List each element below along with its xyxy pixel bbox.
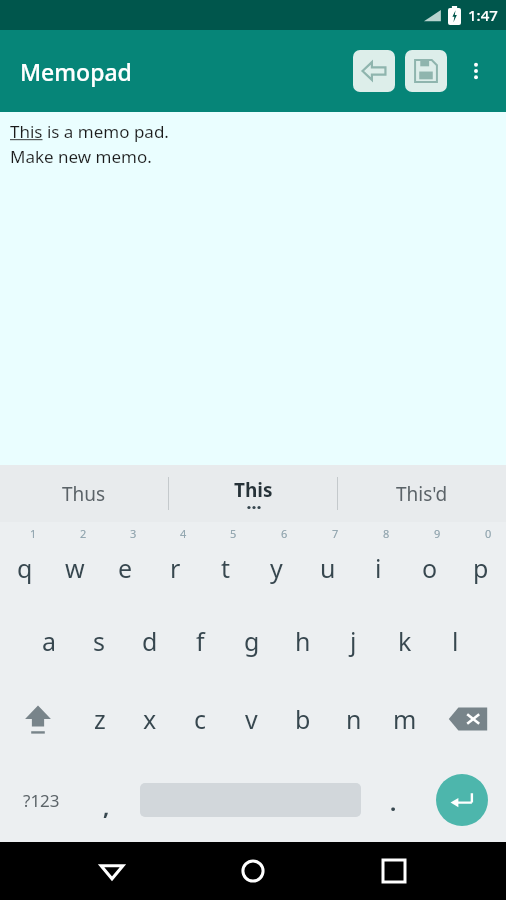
staticText: t [221, 551, 231, 585]
button[interactable]: k [379, 602, 430, 680]
button[interactable]: Back [83, 842, 141, 900]
staticText: r [170, 551, 181, 585]
button[interactable]: 1 [0, 522, 50, 602]
staticText: 2 [80, 526, 87, 541]
button[interactable]: l [430, 602, 481, 680]
staticText: 5 [230, 526, 237, 541]
button[interactable]: 5 [200, 522, 251, 602]
staticText: f [196, 624, 205, 658]
staticText: h [295, 624, 311, 658]
button[interactable]: 7 [302, 522, 353, 602]
staticText: 9 [434, 526, 441, 541]
staticText: s [93, 624, 105, 658]
staticText: n [346, 702, 362, 736]
button[interactable]: More options [452, 47, 500, 95]
staticText: g [244, 624, 260, 658]
button[interactable]: f [175, 602, 226, 680]
button[interactable]: 9 [404, 522, 455, 602]
staticText: l [452, 624, 459, 658]
button[interactable]: 3 [100, 522, 150, 602]
button[interactable]: z [75, 680, 125, 758]
button[interactable]: h [277, 602, 328, 680]
staticText: 1 [30, 526, 37, 541]
staticText: v [245, 702, 258, 736]
staticText: 7 [332, 526, 339, 541]
staticText: z [94, 702, 106, 736]
staticText: i [375, 551, 382, 585]
staticText: q [17, 551, 33, 585]
button[interactable]: Back [348, 45, 400, 97]
button[interactable]: Thus [0, 465, 168, 522]
button[interactable]: Space [130, 758, 370, 842]
button[interactable]: , [83, 758, 130, 842]
staticText: This is a memo pad. [10, 120, 169, 143]
button[interactable]: 0 [455, 522, 506, 602]
button[interactable]: Home [224, 842, 282, 900]
staticText: , [103, 791, 110, 821]
staticText: w [65, 551, 85, 585]
button[interactable]: 6 [251, 522, 302, 602]
button[interactable]: c [175, 680, 226, 758]
staticText: m [393, 702, 417, 736]
staticText: x [143, 702, 157, 736]
staticText: This'd [396, 481, 448, 507]
button[interactable]: j [328, 602, 379, 680]
staticText: 0 [485, 526, 492, 541]
staticText: Thus [62, 481, 106, 507]
staticText: a [42, 624, 57, 658]
button[interactable]: g [226, 602, 277, 680]
button[interactable]: x [125, 680, 175, 758]
staticText: 1:47 [468, 5, 498, 25]
staticText: o [422, 551, 438, 585]
staticText: Memopad [20, 56, 132, 87]
button[interactable]: . [370, 758, 417, 842]
staticText: d [142, 624, 158, 658]
staticText: j [350, 624, 357, 658]
button[interactable]: This [169, 465, 337, 522]
button[interactable]: 4 [150, 522, 200, 602]
button[interactable]: Enter [417, 758, 506, 842]
button[interactable]: This'd [338, 465, 506, 522]
button[interactable]: m [379, 680, 430, 758]
button[interactable]: Shift [0, 680, 75, 758]
staticText: y [270, 551, 283, 585]
button[interactable]: Recents [365, 842, 423, 900]
staticText: k [398, 624, 412, 658]
staticText: 6 [281, 526, 288, 541]
button[interactable]: b [277, 680, 328, 758]
staticText: c [194, 702, 207, 736]
button[interactable]: 8 [353, 522, 404, 602]
staticText: p [473, 551, 489, 585]
button[interactable]: Backspace [430, 680, 506, 758]
button[interactable]: s [74, 602, 124, 680]
button[interactable]: a [24, 602, 74, 680]
button[interactable]: d [124, 602, 175, 680]
button[interactable]: v [226, 680, 277, 758]
staticText: 8 [383, 526, 390, 541]
staticText: This [234, 477, 273, 503]
staticText: . [390, 787, 397, 817]
button[interactable]: Save [400, 45, 452, 97]
staticText: 4 [180, 526, 187, 541]
staticText: e [118, 551, 133, 585]
staticText: 3 [130, 526, 137, 541]
staticText: u [320, 551, 336, 585]
staticText: ?123 [23, 789, 60, 812]
staticText: b [295, 702, 311, 736]
button[interactable]: ?123 [0, 758, 83, 842]
button[interactable]: 2 [50, 522, 100, 602]
staticText: Make new memo. [10, 145, 152, 168]
button[interactable]: n [328, 680, 379, 758]
